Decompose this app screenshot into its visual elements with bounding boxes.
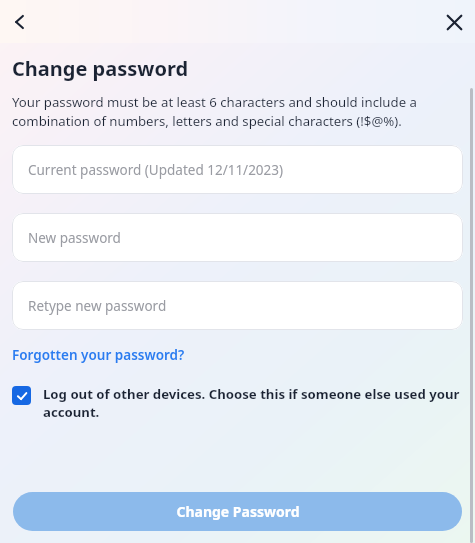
button[interactable]: Log out of other devices. Choose this if… [12,385,463,421]
button[interactable]: New password [12,213,463,262]
staticText: Log out of other devices. Choose this if… [43,385,463,421]
staticText: Change Password [176,502,300,521]
button[interactable]: Close [437,5,471,39]
staticText: Retype new password [28,297,167,315]
button[interactable]: Back [4,6,36,38]
button[interactable]: Current password (Updated 12/11/2023) [12,145,463,194]
staticText: Forgotten your password? [12,346,185,364]
button[interactable]: Forgotten your password? [12,346,185,364]
staticText: Your password must be at least 6 charact… [12,93,463,130]
button[interactable]: Retype new password [12,281,463,330]
button[interactable]: Change Password [13,492,462,531]
staticText: New password [28,229,121,247]
staticText: Current password (Updated 12/11/2023) [28,161,284,179]
staticText: Change password [12,55,189,82]
